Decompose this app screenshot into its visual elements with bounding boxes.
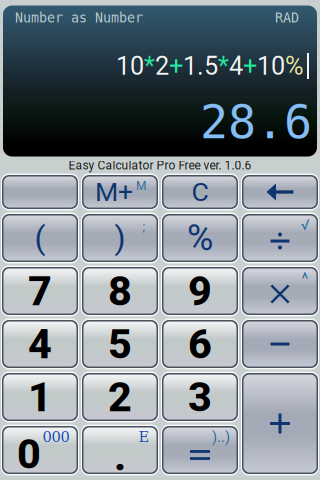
staticText: E bbox=[138, 428, 149, 446]
staticText: 000 bbox=[42, 428, 69, 446]
staticText: + bbox=[243, 51, 257, 81]
staticText: + bbox=[169, 51, 183, 81]
staticText: C bbox=[191, 176, 208, 208]
staticText: 28.6 bbox=[200, 95, 312, 149]
button[interactable] bbox=[240, 370, 320, 476]
staticText: Number as Number bbox=[15, 10, 143, 26]
button[interactable]: 1 bbox=[0, 370, 80, 423]
button[interactable]: ^ bbox=[240, 264, 320, 317]
staticText: RAD bbox=[275, 10, 299, 26]
staticText: ) bbox=[114, 219, 125, 257]
staticText: 0 bbox=[17, 430, 41, 478]
button[interactable]: 6 bbox=[160, 317, 240, 370]
button[interactable]: 9 bbox=[160, 264, 240, 317]
button[interactable]: M+ bbox=[80, 172, 160, 211]
staticText: ; bbox=[142, 220, 145, 234]
staticText: 3 bbox=[188, 373, 212, 421]
button[interactable]: 5 bbox=[80, 317, 160, 370]
button[interactable]: 3 bbox=[160, 370, 240, 423]
button[interactable] bbox=[240, 172, 320, 211]
staticText: 4 bbox=[229, 51, 243, 81]
staticText: 9 bbox=[188, 267, 212, 315]
button[interactable]: √ bbox=[240, 211, 320, 264]
staticText: M+ bbox=[95, 176, 133, 208]
button[interactable]: C bbox=[160, 172, 240, 211]
button[interactable]: 2 bbox=[80, 370, 160, 423]
button[interactable]: 8 bbox=[80, 264, 160, 317]
staticText: √ bbox=[300, 216, 309, 234]
staticText: Easy Calculator Pro Free ver. 1.0.6 bbox=[68, 158, 251, 173]
staticText: M bbox=[136, 179, 146, 193]
staticText: 5 bbox=[108, 320, 132, 368]
staticText: 10 bbox=[257, 51, 285, 81]
staticText: * bbox=[218, 51, 229, 81]
staticText: 1.5 bbox=[183, 51, 218, 81]
staticText: 4 bbox=[28, 320, 52, 368]
button[interactable]: % bbox=[160, 211, 240, 264]
button[interactable]: )..) bbox=[160, 423, 240, 476]
staticText: 6 bbox=[188, 320, 212, 368]
staticText: 10 bbox=[116, 51, 144, 81]
staticText: 8 bbox=[108, 267, 132, 315]
staticText: 2 bbox=[155, 51, 169, 81]
staticText: 2 bbox=[108, 373, 132, 421]
button[interactable]: 0 bbox=[0, 423, 80, 476]
staticText: 1 bbox=[28, 373, 52, 421]
button[interactable] bbox=[240, 317, 320, 370]
staticText: % bbox=[285, 51, 304, 81]
staticText: ^ bbox=[301, 270, 308, 288]
staticText: % bbox=[187, 217, 213, 259]
staticText: * bbox=[144, 51, 155, 81]
button[interactable]: ) bbox=[80, 211, 160, 264]
button[interactable]: 7 bbox=[0, 264, 80, 317]
button[interactable] bbox=[0, 172, 80, 211]
button[interactable]: . bbox=[80, 423, 160, 476]
button[interactable]: ( bbox=[0, 211, 80, 264]
staticText: . bbox=[114, 432, 126, 480]
staticText: )..) bbox=[212, 428, 230, 446]
button[interactable]: 4 bbox=[0, 317, 80, 370]
staticText: 7 bbox=[28, 267, 52, 315]
staticText: ( bbox=[34, 219, 45, 257]
